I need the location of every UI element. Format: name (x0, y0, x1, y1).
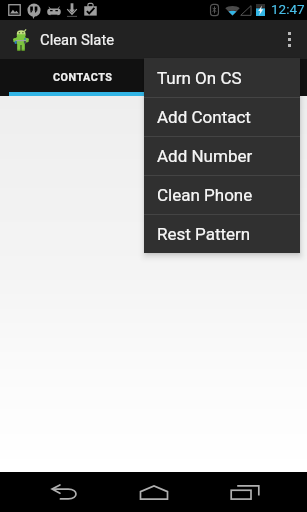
staticText: Turn On CS (157, 68, 242, 88)
staticText: Clean Phone (157, 185, 253, 205)
button[interactable]: CONTACTS (9, 59, 153, 92)
button[interactable]: Home (124, 472, 184, 512)
staticText: Add Number (157, 146, 253, 166)
button[interactable]: Back (34, 472, 94, 512)
staticText: Rest Pattern (157, 224, 251, 244)
button[interactable] (153, 59, 307, 92)
staticText: Add Contact (157, 107, 251, 127)
staticText: Clean Slate (40, 31, 115, 48)
button[interactable]: Turn On CS (144, 58, 300, 97)
button[interactable]: Clean Phone (144, 176, 300, 214)
button[interactable]: Add Number (144, 137, 300, 175)
button[interactable]: More options (271, 20, 307, 59)
staticText: 12:47 (271, 1, 305, 17)
staticText: CONTACTS (53, 71, 113, 84)
button[interactable]: Rest Pattern (144, 215, 300, 253)
button[interactable]: Add Contact (144, 98, 300, 136)
button[interactable]: Recent apps (215, 472, 275, 512)
